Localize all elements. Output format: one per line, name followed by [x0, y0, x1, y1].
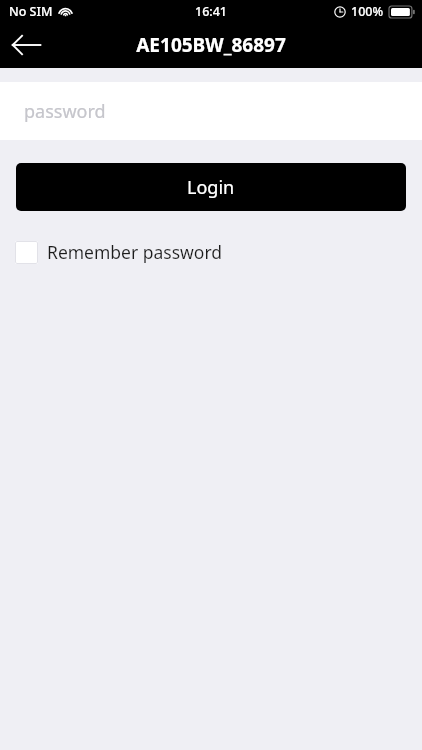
staticText: Remember password	[47, 240, 223, 264]
staticText: AE105BW_86897	[136, 32, 286, 58]
button[interactable]: Remember password	[15, 238, 223, 266]
staticText: 100%	[351, 3, 384, 20]
button[interactable]: Login	[16, 163, 406, 211]
staticText: 16:41	[195, 3, 228, 20]
staticText: No SIM	[9, 3, 53, 20]
staticText: password	[24, 99, 106, 124]
button[interactable]: password	[0, 82, 422, 140]
staticText: Login	[187, 175, 235, 200]
button[interactable]: Back	[0, 22, 52, 68]
